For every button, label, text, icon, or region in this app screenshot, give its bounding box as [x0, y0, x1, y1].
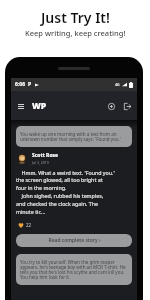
staticText: P: [28, 81, 32, 88]
staticText: Just Try It!: [41, 8, 110, 27]
staticText: 22: [26, 222, 32, 228]
button[interactable]: Log out: [121, 100, 133, 112]
button[interactable]: Menu: [15, 100, 27, 112]
staticText: 6:06: [15, 81, 25, 88]
button[interactable]: Like: [16, 222, 32, 228]
staticText: 46: [115, 82, 120, 87]
staticText: Scott Rose: [32, 152, 59, 159]
staticText: Keep writing, keep creating!: [25, 28, 126, 38]
button[interactable]: You wake up one morning with a text from…: [16, 126, 132, 147]
button[interactable]: Add: [105, 100, 117, 112]
staticText: Hmm. What a weird text. 'Found you.' the…: [16, 169, 115, 216]
button[interactable]: You try to kill yourself. When the grim …: [16, 254, 132, 285]
button[interactable]: Read complete story ›: [16, 234, 132, 247]
staticText: Read complete story ›: [48, 237, 101, 244]
staticText: Jul 3, 2019: [32, 160, 49, 165]
staticText: You wake up one morning with a text from…: [20, 131, 121, 142]
staticText: WP: [32, 100, 47, 112]
staticText: You try to kill yourself. When the grim …: [20, 259, 126, 280]
